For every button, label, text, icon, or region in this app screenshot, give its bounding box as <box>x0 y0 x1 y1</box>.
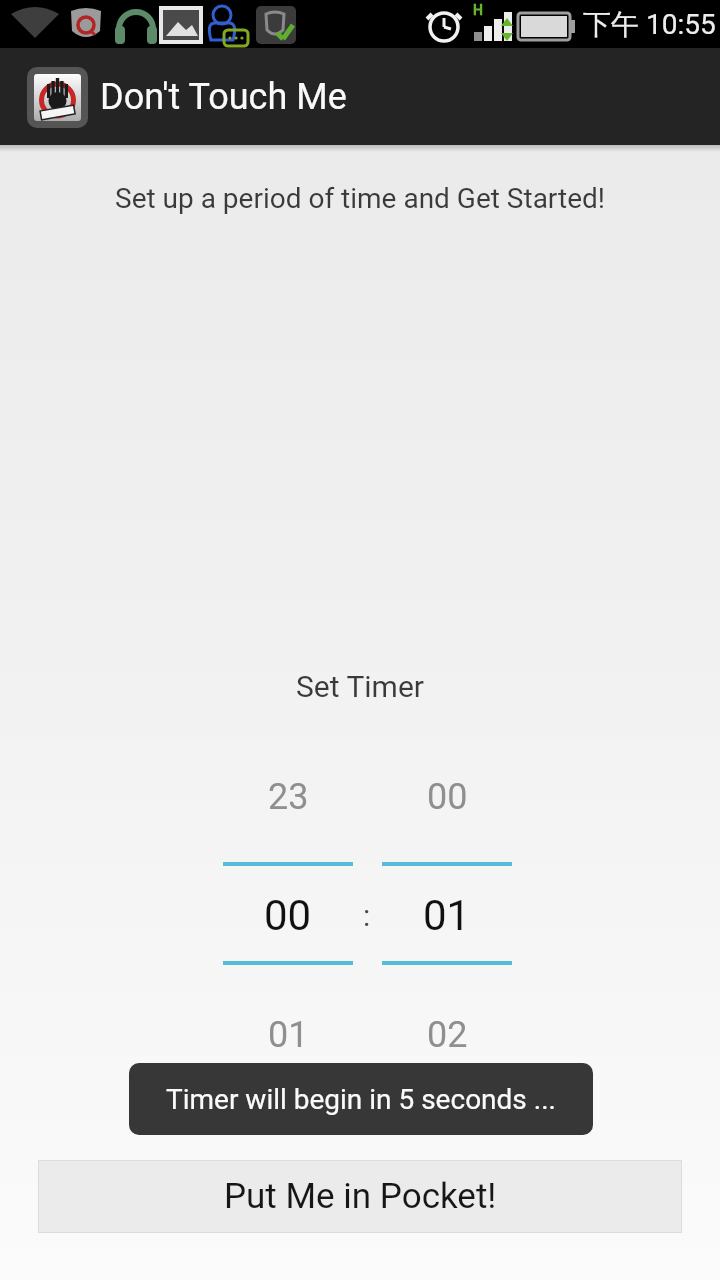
staticText: Timer will begin in 5 seconds ... <box>166 1083 556 1116</box>
staticText: 02 <box>427 1014 468 1056</box>
staticText: 01 <box>423 891 471 940</box>
button[interactable] <box>223 855 353 969</box>
staticText: 00 <box>264 891 312 940</box>
staticText: Put Me in Pocket! <box>224 1176 497 1217</box>
staticText: 00 <box>427 776 468 818</box>
staticText: 下午 10:55 <box>583 7 716 42</box>
staticText: : <box>363 898 371 933</box>
staticText: 01 <box>268 1014 309 1056</box>
staticText: 23 <box>268 776 309 818</box>
button[interactable] <box>382 855 512 969</box>
button[interactable]: Put Me in Pocket! <box>38 1160 682 1233</box>
staticText: Don't Touch Me <box>100 76 347 118</box>
staticText: Set up a period of time and Get Started! <box>115 182 606 215</box>
staticText: Set Timer <box>296 669 424 704</box>
staticText: H <box>473 2 483 18</box>
